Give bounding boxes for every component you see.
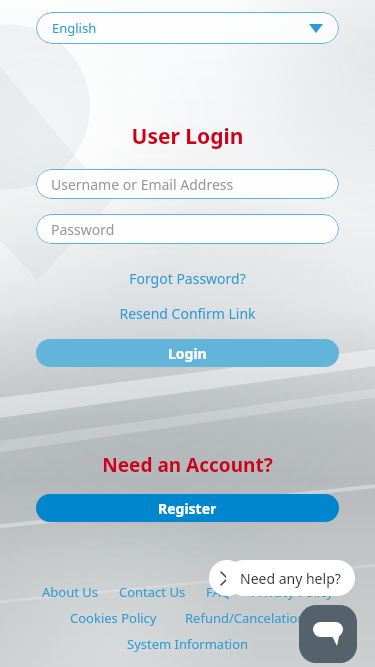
- button[interactable]: Password: [36, 214, 339, 244]
- staticText: User Login: [0, 122, 375, 151]
- staticText: Cookies Policy: [70, 609, 157, 627]
- staticText: FAQ: [206, 583, 231, 601]
- button[interactable]: Login: [36, 339, 339, 367]
- staticText: Login: [168, 344, 207, 363]
- staticText: System Information: [127, 635, 249, 653]
- button[interactable]: Resend Confirm Link: [0, 302, 375, 325]
- staticText: Password: [51, 220, 115, 239]
- staticText: About Us: [42, 583, 99, 601]
- button[interactable]: Register: [36, 494, 339, 522]
- staticText: Contact Us: [119, 583, 186, 601]
- button[interactable]: Username or Email Address: [36, 169, 339, 199]
- staticText: English: [52, 19, 97, 37]
- button[interactable]: Cookies Policy: [69, 608, 158, 628]
- button[interactable]: FAQ: [205, 582, 232, 602]
- button[interactable]: Need any help?: [226, 560, 355, 596]
- staticText: Refund/Cancelation: [185, 609, 306, 627]
- staticText: Need any help?: [240, 569, 341, 588]
- button[interactable]: Open chat: [299, 605, 357, 663]
- staticText: Need an Account?: [0, 452, 375, 478]
- button[interactable]: About Us: [41, 582, 100, 602]
- button[interactable]: System Information: [126, 634, 250, 654]
- staticText: Register: [158, 499, 217, 518]
- button[interactable]: Privacy Policy: [250, 582, 335, 602]
- staticText: Username or Email Address: [51, 175, 234, 194]
- staticText: Privacy Policy: [251, 583, 334, 601]
- button[interactable]: Contact Us: [118, 582, 187, 602]
- button[interactable]: Refund/Cancelation: [184, 608, 307, 628]
- button[interactable]: English: [36, 12, 339, 44]
- button[interactable]: Forgot Password?: [0, 267, 375, 290]
- button[interactable]: Close chat prompt: [209, 560, 245, 596]
